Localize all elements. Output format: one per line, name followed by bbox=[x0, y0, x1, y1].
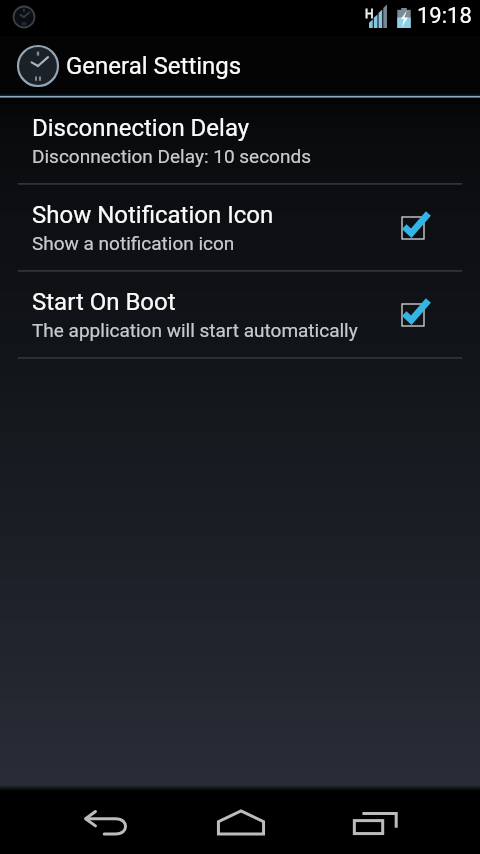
staticText: Start On Boot bbox=[32, 288, 176, 316]
button[interactable]: Start On Boot bbox=[0, 272, 480, 357]
button[interactable]: Toggle setting bbox=[394, 208, 434, 248]
button[interactable]: Back bbox=[38, 791, 173, 854]
button[interactable]: Disconnection Delay bbox=[0, 98, 480, 183]
button[interactable]: Home bbox=[173, 791, 308, 854]
staticText: Disconnection Delay: 10 seconds bbox=[32, 145, 311, 167]
staticText: Show Notification Icon bbox=[32, 201, 274, 229]
other: Navigate up bbox=[15, 43, 61, 89]
button[interactable]: Toggle setting bbox=[394, 295, 434, 335]
staticText: Disconnection Delay bbox=[32, 114, 250, 142]
staticText: 19:18 bbox=[417, 3, 472, 28]
staticText: General Settings bbox=[66, 52, 242, 80]
button[interactable]: Recent apps bbox=[308, 791, 443, 854]
button[interactable]: Navigate up bbox=[0, 36, 254, 98]
button[interactable]: Show Notification Icon bbox=[0, 185, 480, 270]
staticText: H bbox=[365, 7, 374, 21]
staticText: The application will start automatically bbox=[32, 319, 358, 341]
staticText: Show a notification icon bbox=[32, 232, 235, 254]
